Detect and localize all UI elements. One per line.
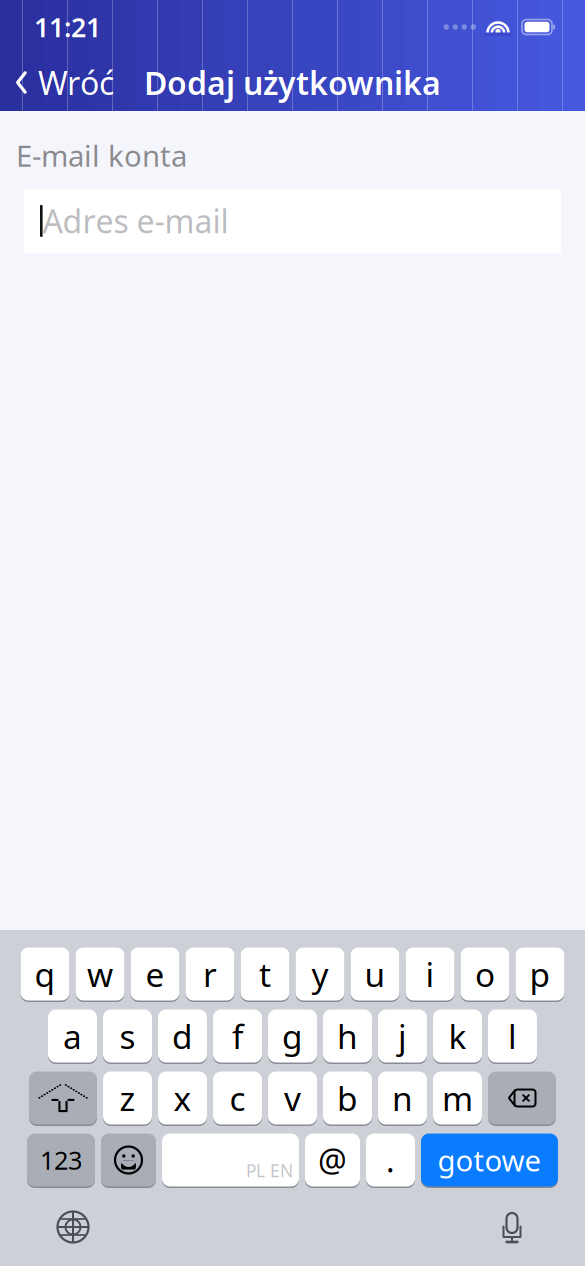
staticText: p xyxy=(529,952,550,996)
button[interactable]: j xyxy=(378,1008,427,1064)
button[interactable]: l xyxy=(488,1008,537,1064)
button[interactable]: k xyxy=(433,1008,482,1064)
staticText: Wróć xyxy=(38,61,114,104)
button[interactable]: d xyxy=(158,1008,207,1064)
staticText: w xyxy=(87,952,113,996)
button[interactable]: Spacja xyxy=(162,1132,299,1188)
staticText: . xyxy=(386,1139,395,1181)
staticText: e xyxy=(145,952,164,996)
button[interactable]: y xyxy=(295,946,344,1002)
button[interactable]: c xyxy=(213,1070,262,1126)
button[interactable]: s xyxy=(103,1008,152,1064)
button[interactable]: Cyfry xyxy=(27,1132,95,1188)
staticText: o xyxy=(475,952,495,996)
staticText: b xyxy=(337,1076,358,1120)
staticText: a xyxy=(63,1014,82,1058)
staticText: f xyxy=(232,1014,243,1058)
staticText: m xyxy=(442,1076,473,1120)
button[interactable]: Shift xyxy=(29,1070,97,1126)
staticText: E-mail konta xyxy=(16,136,187,175)
button[interactable]: t xyxy=(240,946,289,1002)
button[interactable]: q xyxy=(20,946,69,1002)
button[interactable]: i xyxy=(405,946,454,1002)
staticText: v xyxy=(284,1076,301,1120)
staticText: u xyxy=(364,952,385,996)
staticText: x xyxy=(173,1076,191,1120)
button[interactable]: g xyxy=(268,1008,317,1064)
staticText: s xyxy=(119,1014,135,1058)
staticText: i xyxy=(425,952,434,996)
button[interactable]: w xyxy=(75,946,124,1002)
button[interactable]: Dyktowanie xyxy=(485,1199,539,1255)
button[interactable]: gotowe xyxy=(421,1132,558,1188)
staticText: q xyxy=(34,952,55,996)
button[interactable]: @ xyxy=(305,1132,360,1188)
staticText: Dodaj użytkownika xyxy=(144,61,441,104)
staticText: Adres e-mail xyxy=(43,200,229,242)
button[interactable]: m xyxy=(433,1070,482,1126)
staticText: k xyxy=(448,1014,466,1058)
staticText: g xyxy=(282,1014,303,1058)
button[interactable]: f xyxy=(213,1008,262,1064)
button[interactable]: n xyxy=(378,1070,427,1126)
button[interactable]: o xyxy=(460,946,509,1002)
staticText: r xyxy=(203,952,217,996)
staticText: j xyxy=(398,1014,407,1058)
staticText: d xyxy=(172,1014,193,1058)
staticText: @ xyxy=(318,1139,347,1181)
staticText: gotowe xyxy=(437,1140,541,1179)
button[interactable]: u xyxy=(350,946,399,1002)
button[interactable]: a xyxy=(48,1008,97,1064)
staticText: t xyxy=(259,952,271,996)
staticText: z xyxy=(119,1076,135,1120)
button[interactable]: r xyxy=(185,946,234,1002)
staticText: h xyxy=(337,1014,358,1058)
staticText: c xyxy=(229,1076,245,1120)
staticText: y xyxy=(311,952,328,996)
button[interactable]: p xyxy=(515,946,564,1002)
staticText: 123 xyxy=(40,1143,82,1177)
staticText: 11:21 xyxy=(34,9,101,45)
button[interactable]: x xyxy=(158,1070,207,1126)
staticText: PL EN xyxy=(246,1159,293,1182)
staticText: n xyxy=(392,1076,413,1120)
button[interactable]: h xyxy=(323,1008,372,1064)
button[interactable]: Emoji xyxy=(101,1132,156,1188)
button[interactable]: v xyxy=(268,1070,317,1126)
button[interactable]: Zmień język xyxy=(46,1200,100,1254)
button[interactable]: z xyxy=(103,1070,152,1126)
button[interactable]: e xyxy=(130,946,179,1002)
staticText: l xyxy=(508,1014,517,1058)
button[interactable]: Usuń xyxy=(488,1070,556,1126)
button[interactable]: Wróć xyxy=(0,56,114,108)
button[interactable]: . xyxy=(366,1132,415,1188)
button[interactable]: b xyxy=(323,1070,372,1126)
